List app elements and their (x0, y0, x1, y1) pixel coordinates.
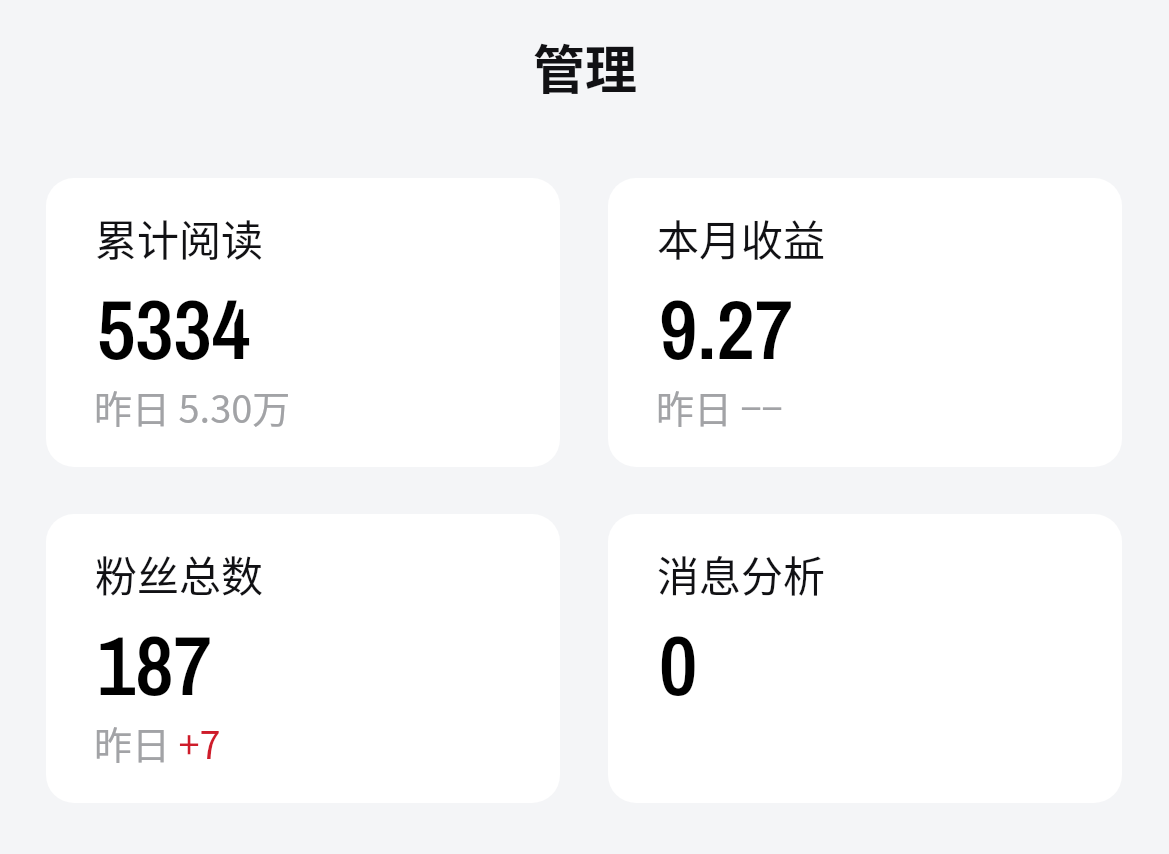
staticText: 累计阅读 (95, 207, 264, 268)
button[interactable]: 累计阅读 (46, 178, 560, 467)
button[interactable]: 粉丝总数 (46, 514, 560, 803)
staticText: 粉丝总数 (95, 543, 264, 604)
staticText: 消息分析 (657, 543, 826, 604)
staticText: 昨日 −− (656, 379, 783, 434)
staticText: 5334 (97, 272, 251, 385)
staticText: 昨日 5.30万 (94, 379, 291, 434)
staticText: 管理 (533, 29, 638, 104)
button[interactable]: 消息分析 (608, 514, 1122, 803)
button[interactable]: 本月收益 (608, 178, 1122, 467)
staticText: 187 (97, 608, 212, 721)
staticText: 9.27 (659, 272, 794, 385)
staticText: 0 (659, 608, 698, 721)
staticText: 本月收益 (657, 207, 826, 268)
staticText: 昨日 +7 (94, 715, 221, 770)
